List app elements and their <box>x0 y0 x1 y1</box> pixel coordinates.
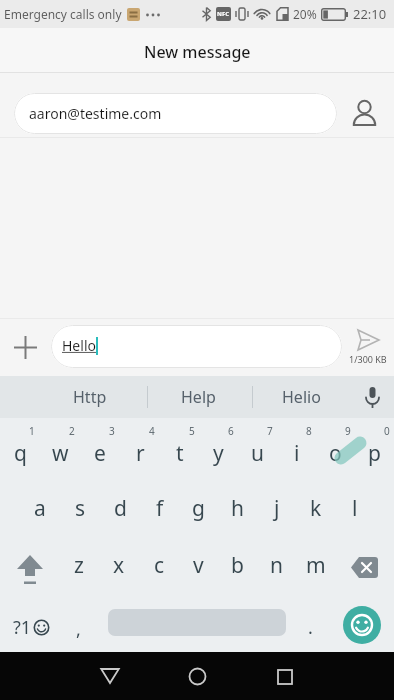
button[interactable]: n <box>257 534 296 592</box>
staticText: 7 <box>267 424 273 438</box>
staticText: , <box>76 617 81 642</box>
staticText: r <box>136 439 145 468</box>
staticText: New message <box>144 41 251 63</box>
staticText: Http <box>73 386 107 408</box>
staticText: y <box>213 439 224 468</box>
staticText: w <box>52 439 69 468</box>
button[interactable]: 4 <box>120 418 160 476</box>
button[interactable]: Hello <box>51 325 342 368</box>
staticText: 3 <box>109 424 115 438</box>
staticText: aaron@testime.com <box>29 104 162 123</box>
button[interactable]: Helio <box>253 376 349 418</box>
staticText: 9 <box>345 424 351 438</box>
button[interactable] <box>175 652 219 700</box>
staticText: p <box>368 439 381 468</box>
staticText: Hello <box>62 336 96 355</box>
staticText: d <box>114 494 127 523</box>
staticText: n <box>270 551 283 580</box>
button[interactable]: j <box>257 476 296 534</box>
button[interactable]: s <box>60 476 100 534</box>
button[interactable]: m <box>296 534 335 592</box>
button[interactable]: b <box>218 534 257 592</box>
button[interactable] <box>341 92 387 134</box>
staticText: 22:10 <box>353 5 387 23</box>
button[interactable]: 6 <box>199 418 238 476</box>
button[interactable] <box>0 534 59 592</box>
staticText: 2 <box>69 424 75 438</box>
button[interactable] <box>335 534 394 592</box>
button[interactable]: k <box>296 476 335 534</box>
button[interactable]: c <box>139 534 179 592</box>
staticText: ?1 <box>13 615 32 640</box>
button[interactable]: Http <box>40 376 140 418</box>
staticText: j <box>274 494 280 523</box>
staticText: x <box>113 551 125 580</box>
button[interactable]: 1/300 KB <box>342 319 394 376</box>
button[interactable]: f <box>140 476 179 534</box>
staticText: q <box>14 439 27 468</box>
button[interactable]: 0 <box>355 418 394 476</box>
staticText: 4 <box>149 424 155 438</box>
staticText: 8 <box>306 424 312 438</box>
staticText: . <box>308 615 313 640</box>
staticText: 1 <box>29 424 35 438</box>
staticText: s <box>75 494 86 523</box>
button[interactable]: 7 <box>238 418 277 476</box>
button[interactable]: v <box>179 534 218 592</box>
button[interactable] <box>343 606 381 644</box>
button[interactable]: d <box>100 476 140 534</box>
staticText: o <box>329 439 342 468</box>
button[interactable]: aaron@testime.com <box>14 93 337 134</box>
staticText: k <box>310 494 322 523</box>
staticText: z <box>74 551 84 580</box>
staticText: Help <box>181 386 216 408</box>
staticText: 5 <box>189 424 195 438</box>
staticText: Helio <box>282 386 321 408</box>
staticText: g <box>192 494 205 523</box>
staticText: b <box>231 551 244 580</box>
staticText: Emergency calls only <box>4 6 122 22</box>
staticText: 20% <box>293 6 317 22</box>
button[interactable]: 5 <box>160 418 199 476</box>
button[interactable]: a <box>20 476 60 534</box>
button[interactable]: x <box>99 534 139 592</box>
button[interactable]: l <box>335 476 374 534</box>
staticText: e <box>94 439 106 468</box>
staticText: m <box>306 551 326 580</box>
staticText: 1/300 KB <box>349 353 387 365</box>
button[interactable]: h <box>218 476 257 534</box>
staticText: 0 <box>384 424 390 438</box>
staticText: a <box>34 494 46 523</box>
staticText: l <box>352 494 358 523</box>
staticText: u <box>251 439 264 468</box>
button[interactable] <box>350 376 394 418</box>
staticText: 6 <box>228 424 234 438</box>
button[interactable]: z <box>59 534 99 592</box>
staticText: NFC <box>217 10 230 18</box>
staticText: h <box>231 494 244 523</box>
button[interactable]: g <box>179 476 218 534</box>
button[interactable]: 1 <box>0 418 40 476</box>
button[interactable]: 3 <box>80 418 120 476</box>
staticText: c <box>154 551 165 580</box>
button[interactable]: Help <box>148 376 248 418</box>
staticText: v <box>193 551 204 580</box>
staticText: f <box>156 494 164 523</box>
button[interactable]: 2 <box>40 418 80 476</box>
button[interactable] <box>0 319 51 376</box>
button[interactable]: 9 <box>316 418 355 476</box>
staticText: t <box>176 439 184 468</box>
button[interactable]: ?1 <box>13 615 50 640</box>
button[interactable] <box>88 652 132 700</box>
staticText: i <box>294 439 300 468</box>
button[interactable] <box>262 652 306 700</box>
button[interactable]: 8 <box>277 418 316 476</box>
